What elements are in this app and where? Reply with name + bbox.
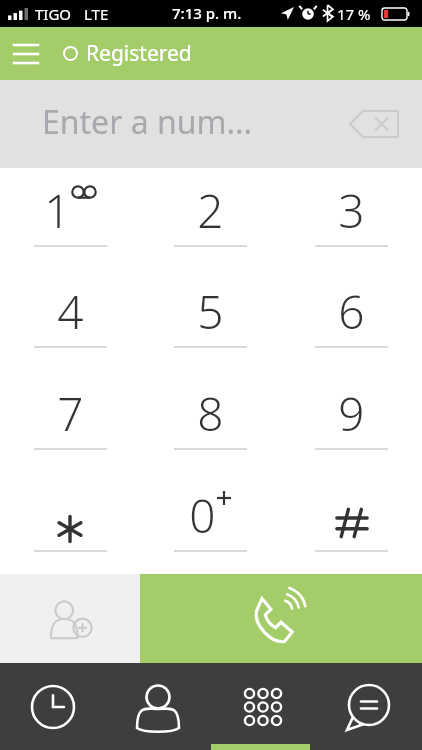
button[interactable]: Contacts <box>105 663 210 750</box>
staticText: 5 <box>197 280 224 343</box>
staticText: LTE <box>84 4 109 24</box>
button[interactable]: Backspace <box>344 99 404 149</box>
staticText: TIGO <box>35 4 72 24</box>
button[interactable] <box>281 472 422 574</box>
staticText: 7 <box>57 382 84 445</box>
button[interactable]: Add contact <box>0 574 140 663</box>
button[interactable]: 4 <box>0 269 140 370</box>
staticText: 4 <box>57 280 84 343</box>
button[interactable]: 6 <box>281 269 422 370</box>
button[interactable]: 5 <box>140 269 281 370</box>
staticText: 8 <box>197 382 224 445</box>
button[interactable]: 7 <box>0 370 140 472</box>
button[interactable]: Keypad <box>210 663 316 750</box>
button[interactable]: 3 <box>281 168 422 269</box>
staticText: 1 <box>44 179 71 242</box>
staticText: 3 <box>338 179 365 242</box>
button[interactable]: Menu <box>10 39 42 69</box>
button[interactable]: Messages <box>316 663 422 750</box>
staticText: 17 % <box>337 4 371 24</box>
staticText: 7:13 p. m. <box>172 3 242 23</box>
staticText: 9 <box>338 382 365 445</box>
button[interactable]: 0 <box>140 472 281 574</box>
staticText: 6 <box>338 280 365 343</box>
button[interactable]: Recents <box>0 663 105 750</box>
button[interactable]: 9 <box>281 370 422 472</box>
button[interactable]: 8 <box>140 370 281 472</box>
staticText: Registered <box>86 39 192 68</box>
button[interactable]: Call <box>140 574 422 663</box>
button[interactable] <box>0 472 140 574</box>
staticText: 0 <box>189 484 216 547</box>
staticText: Enter a num... <box>42 100 253 144</box>
staticText: 2 <box>197 179 224 242</box>
button[interactable]: 2 <box>140 168 281 269</box>
button[interactable]: 1 <box>0 168 140 269</box>
